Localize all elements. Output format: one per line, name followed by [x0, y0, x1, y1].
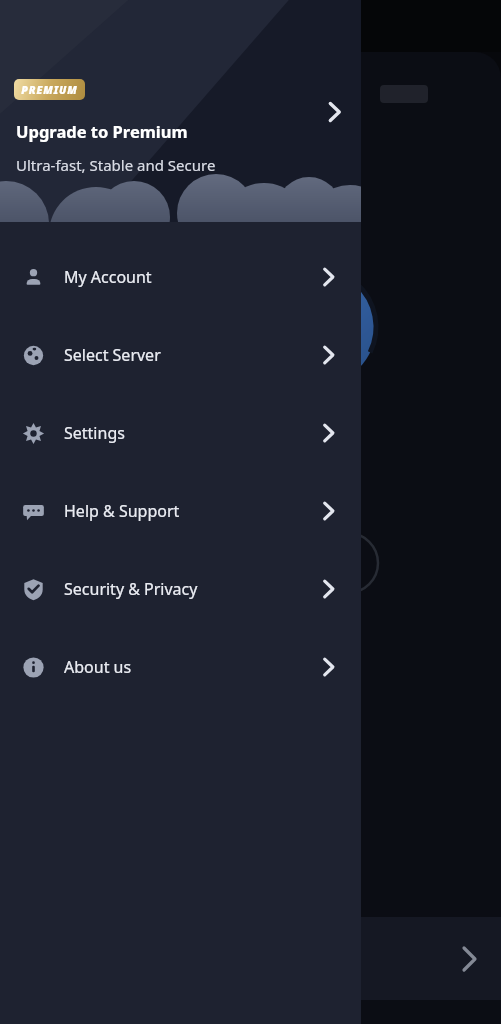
- staticText: PREMIUM: [21, 83, 78, 97]
- button[interactable]: My Account: [0, 238, 361, 316]
- button[interactable]: Settings: [0, 394, 361, 472]
- staticText: Upgrade to Premium: [16, 120, 188, 142]
- staticText: My Account: [64, 266, 152, 288]
- button[interactable]: About us: [0, 628, 361, 706]
- button[interactable]: PREMIUM: [0, 0, 361, 222]
- staticText: Settings: [64, 422, 125, 444]
- staticText: Security & Privacy: [64, 578, 198, 600]
- staticText: Ultra-fast, Stable and Secure: [16, 155, 216, 175]
- other: Upgrade to Premium: [322, 99, 348, 125]
- button[interactable]: Help & Support: [0, 472, 361, 550]
- button[interactable]: Select Server: [0, 316, 361, 394]
- staticText: Select Server: [64, 344, 161, 366]
- staticText: About us: [64, 656, 132, 678]
- button[interactable]: Security & Privacy: [0, 550, 361, 628]
- staticText: Help & Support: [64, 500, 180, 522]
